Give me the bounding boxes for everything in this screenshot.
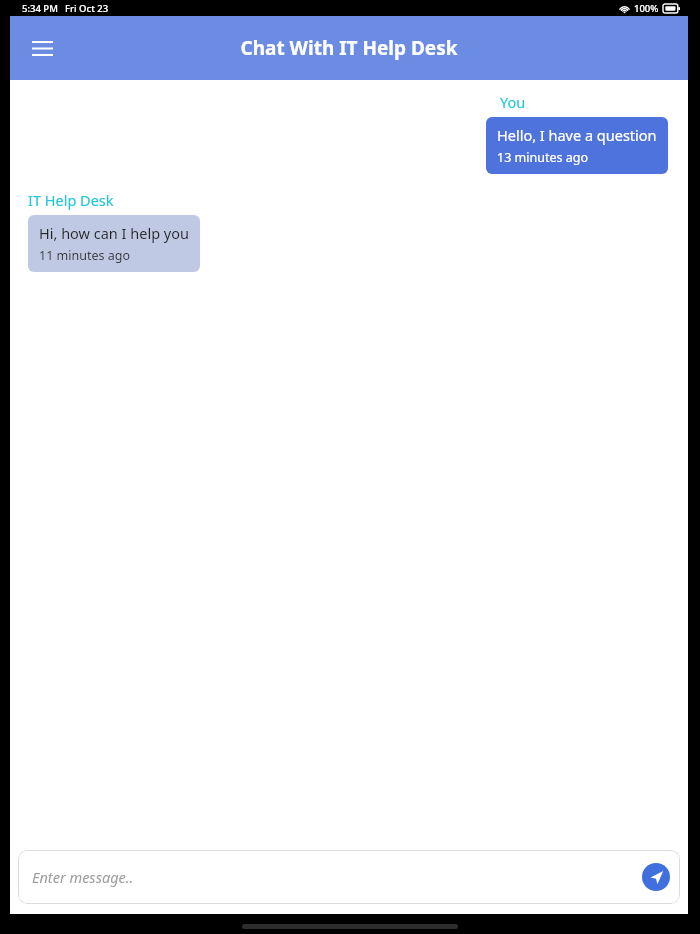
staticText: 11 minutes ago — [39, 247, 130, 264]
staticText: 5:34 PM — [22, 2, 58, 15]
staticText: 13 minutes ago — [497, 149, 588, 166]
button[interactable]: Hello, I have a question — [486, 117, 668, 174]
staticText: Enter message.. — [32, 867, 134, 887]
staticText: Hi, how can I help you — [39, 223, 189, 243]
button[interactable]: Hi, how can I help you — [28, 215, 200, 272]
staticText: IT Help Desk — [28, 190, 114, 210]
staticText: Chat With IT Help Desk — [10, 35, 688, 61]
staticText: Hello, I have a question — [497, 125, 657, 145]
staticText: You — [500, 92, 526, 112]
staticText: 100% — [634, 2, 659, 15]
button[interactable]: Send message — [642, 863, 670, 891]
staticText: Fri Oct 23 — [65, 2, 109, 15]
button[interactable]: Open navigation menu — [18, 24, 66, 72]
button[interactable]: Enter message.. — [32, 867, 642, 887]
